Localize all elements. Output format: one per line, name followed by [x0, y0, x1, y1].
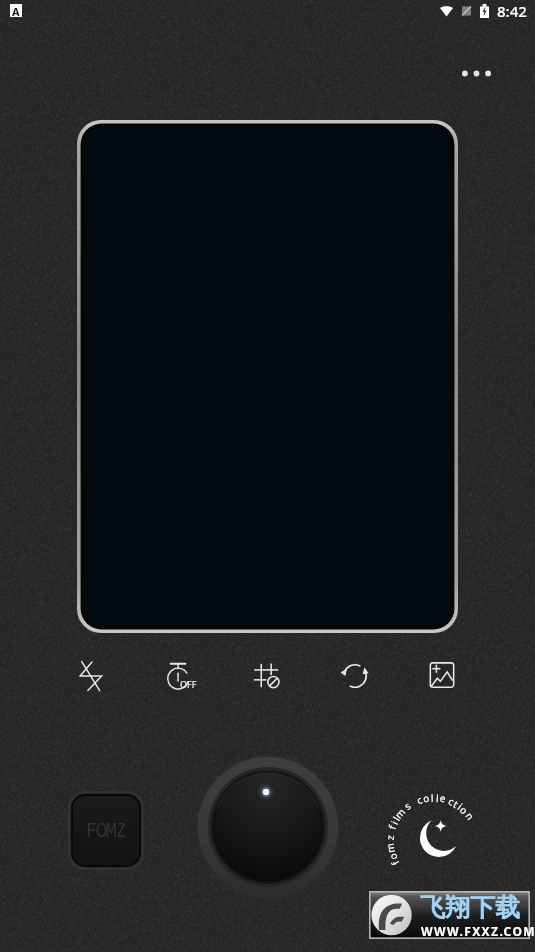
staticText: c	[446, 794, 456, 809]
staticText: i	[387, 818, 401, 827]
staticText: f	[385, 823, 399, 831]
button[interactable]: Add photo	[415, 649, 469, 703]
button[interactable]: Grid off	[240, 649, 294, 703]
button[interactable]: Self timer off	[153, 649, 207, 703]
button[interactable]: FOMZ	[66, 789, 146, 872]
staticText: n	[463, 809, 478, 823]
staticText: f	[388, 858, 402, 868]
staticText: o	[457, 803, 472, 818]
staticText: m	[382, 842, 398, 854]
staticText: z	[383, 834, 397, 841]
staticText: l	[389, 814, 403, 823]
staticText: 8:42	[497, 1, 527, 21]
staticText: c	[415, 792, 424, 807]
button[interactable]: Flash off	[65, 649, 119, 703]
staticText: WWW.FXXZ.COM	[421, 923, 535, 939]
staticText: s	[401, 799, 414, 813]
button[interactable]: More options	[444, 53, 508, 94]
staticText: m	[391, 805, 408, 821]
staticText: l	[431, 791, 434, 805]
button[interactable]: fomz films collection	[385, 782, 489, 886]
staticText: o	[385, 851, 401, 862]
staticText: l	[435, 791, 439, 805]
button[interactable]: Switch camera	[328, 649, 382, 703]
staticText: o	[422, 790, 431, 805]
staticText: A	[12, 4, 20, 17]
staticText: i	[455, 800, 466, 813]
staticText: OFF	[180, 678, 197, 690]
staticText: FOMZ	[86, 817, 126, 843]
staticText: t	[451, 797, 461, 811]
staticText: e	[439, 790, 447, 805]
staticText: 飞翔下载	[420, 892, 520, 923]
button[interactable]: Shutter	[194, 753, 342, 901]
